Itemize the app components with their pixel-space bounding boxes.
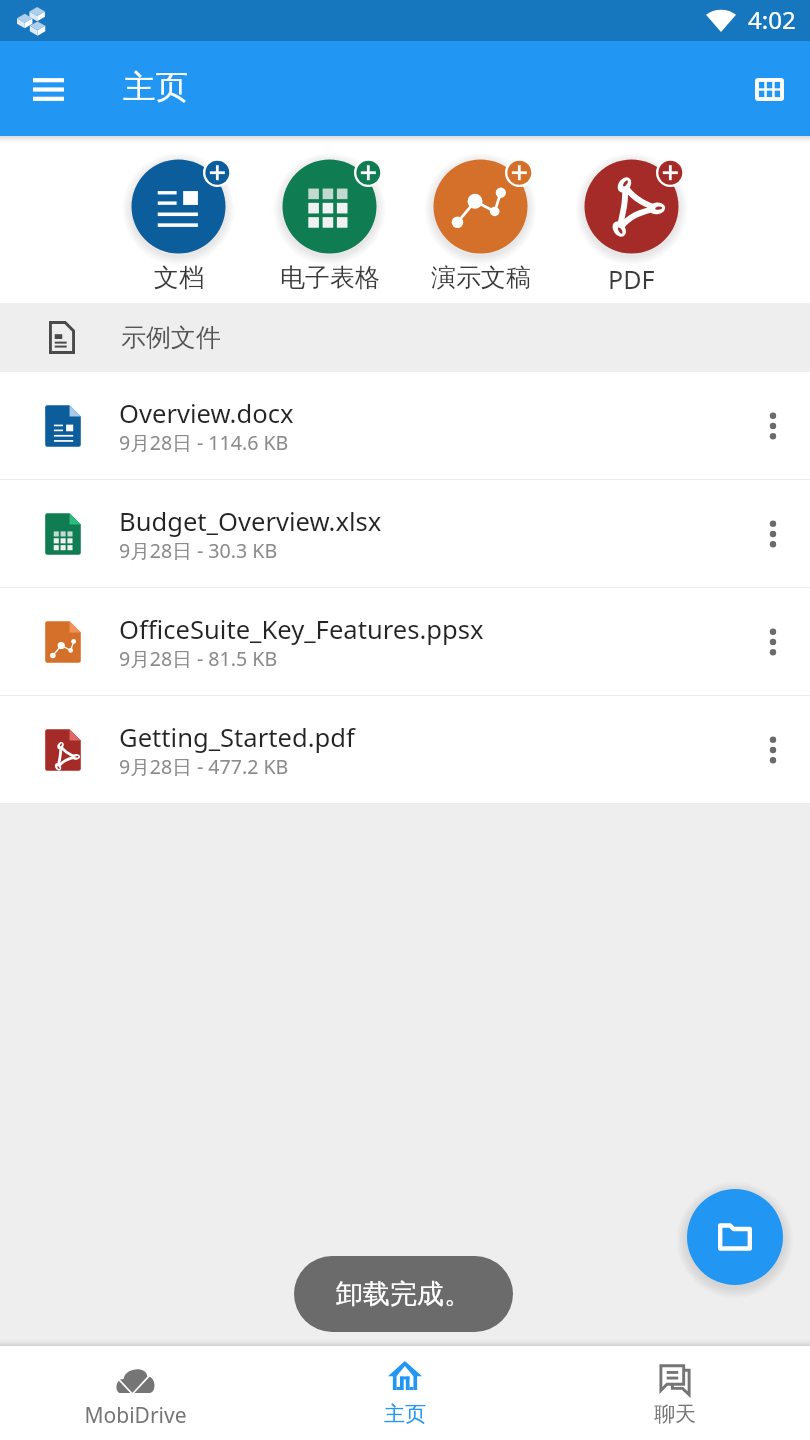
staticText: 演示文稿 (431, 262, 531, 293)
staticText: 9月28日 - 114.6 KB (119, 429, 289, 456)
staticText: 9月28日 - 81.5 KB (119, 645, 278, 672)
button[interactable]: More options (736, 696, 810, 803)
button[interactable]: 示例文件 (0, 303, 810, 372)
button[interactable]: 主页 (270, 1346, 540, 1440)
button[interactable]: 聊天 (540, 1346, 810, 1440)
button[interactable]: 电子表格 (254, 136, 405, 293)
button[interactable]: 文档 (103, 136, 254, 293)
staticText: 卸载完成。 (336, 1277, 471, 1311)
button[interactable]: Budget_Overview.xlsx (0, 480, 810, 587)
button[interactable]: 演示文稿 (405, 136, 556, 293)
button[interactable]: PDF (556, 136, 707, 296)
staticText: MobiDrive (84, 1401, 187, 1430)
staticText: Getting_Started.pdf (119, 720, 355, 755)
button[interactable]: Grid view (733, 53, 805, 125)
staticText: 电子表格 (280, 262, 380, 293)
staticText: Overview.docx (119, 396, 294, 431)
staticText: OfficeSuite_Key_Features.ppsx (119, 612, 484, 647)
staticText: PDF (608, 262, 655, 296)
button[interactable]: More options (736, 588, 810, 695)
staticText: 示例文件 (121, 322, 221, 353)
button[interactable]: More options (736, 372, 810, 479)
staticText: 4:02 (748, 3, 796, 36)
staticText: 主页 (384, 1401, 426, 1427)
staticText: 文档 (154, 262, 204, 293)
staticText: 主页 (123, 67, 188, 108)
staticText: 9月28日 - 477.2 KB (119, 753, 289, 780)
button[interactable]: OfficeSuite_Key_Features.ppsx (0, 588, 810, 695)
button[interactable]: Overview.docx (0, 372, 810, 479)
staticText: 9月28日 - 30.3 KB (119, 537, 278, 564)
button[interactable]: Getting_Started.pdf (0, 696, 810, 803)
button[interactable]: Open folder (687, 1189, 783, 1285)
button[interactable]: Menu (10, 51, 86, 127)
staticText: Budget_Overview.xlsx (119, 504, 382, 539)
button[interactable]: More options (736, 480, 810, 587)
button[interactable]: MobiDrive (0, 1346, 270, 1440)
staticText: 聊天 (654, 1401, 696, 1427)
